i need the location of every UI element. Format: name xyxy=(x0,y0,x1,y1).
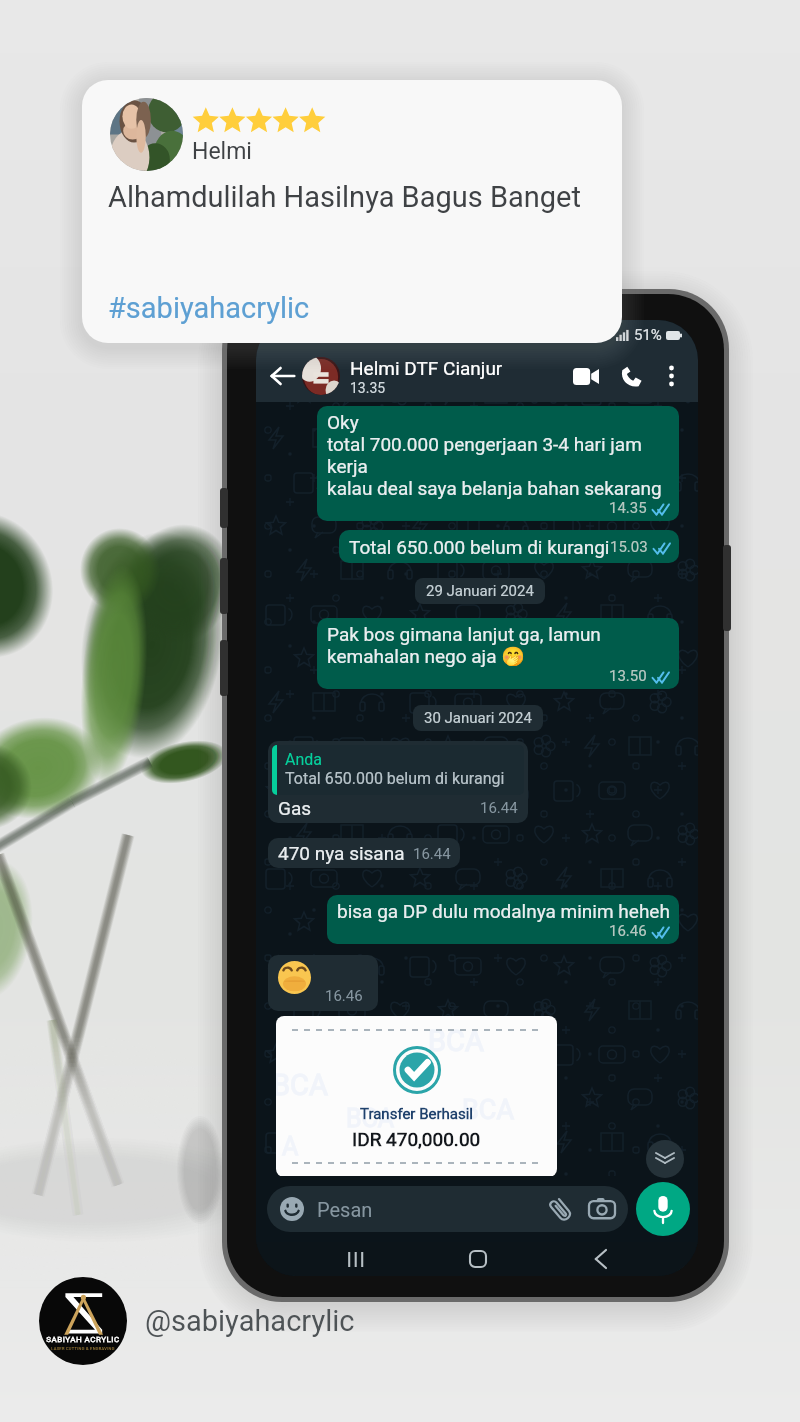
button[interactable]: Video call xyxy=(570,360,602,392)
staticText: 13.50 xyxy=(609,667,647,685)
staticText: 16.44 xyxy=(413,845,451,863)
staticText: Helmi DTF Cianjur xyxy=(350,357,503,379)
staticText: Gas xyxy=(278,797,312,819)
button[interactable]: SABIYAH ACRYLIC xyxy=(39,1277,127,1365)
staticText: @sabiyahacrylic xyxy=(145,1304,355,1338)
staticText: 15.03 xyxy=(610,538,648,556)
staticText: 16.44 xyxy=(480,799,518,817)
staticText: 51% xyxy=(634,326,662,344)
staticText: BCA xyxy=(428,1024,484,1058)
button[interactable]: Pak bos gimana lanjut ga, lamun xyxy=(317,618,679,689)
staticText: kemahalan nego aja 🤭 xyxy=(327,645,525,667)
staticText: Pak bos gimana lanjut ga, lamun xyxy=(327,623,601,645)
staticText: 470 nya sisana xyxy=(278,842,405,864)
staticText: LASER CUTTING & ENGRAVING xyxy=(40,1346,126,1351)
staticText: SABIYAH ACRYLIC xyxy=(40,1335,126,1344)
staticText: Helmi xyxy=(192,138,252,165)
staticText: kerja xyxy=(327,455,368,477)
button[interactable]: Back xyxy=(266,359,300,393)
staticText: Oky xyxy=(327,411,359,433)
staticText: total 700.000 pengerjaan 3-4 hari jam xyxy=(327,433,642,455)
staticText: 29 Januari 2024 xyxy=(426,582,534,600)
button[interactable]: Total 650.000 belum di kurangi xyxy=(339,530,679,563)
staticText: #sabiyahacrylic xyxy=(108,291,310,325)
button[interactable]: 470 nya sisana xyxy=(268,838,460,868)
staticText: BCA xyxy=(346,1104,395,1133)
staticText: 13.35 xyxy=(350,380,386,396)
other: Camera xyxy=(589,1198,615,1220)
staticText: Transfer Berhasil xyxy=(360,1105,474,1123)
button[interactable]: More options xyxy=(658,363,684,389)
staticText: Total 650.000 belum di kurangi xyxy=(285,769,505,788)
button[interactable]: bisa ga DP dulu modalnya minim heheh xyxy=(327,895,679,944)
staticText: BCA xyxy=(462,1094,515,1126)
button[interactable]: Pesan xyxy=(267,1186,628,1232)
button[interactable]: Anda xyxy=(268,741,528,823)
staticText: Anda xyxy=(285,750,322,769)
staticText: 16.46 xyxy=(325,987,363,1005)
staticText: Pesan xyxy=(317,1198,373,1221)
staticText: Total 650.000 belum di kurangi xyxy=(349,536,610,558)
staticText: 30 Januari 2024 xyxy=(424,709,532,727)
button[interactable]: Helmi xyxy=(82,80,622,343)
staticText: bisa ga DP dulu modalnya minim heheh xyxy=(337,900,670,922)
other: Attach xyxy=(549,1197,572,1222)
button[interactable]: Call xyxy=(616,361,646,391)
button[interactable]: 16.46 xyxy=(268,955,378,1011)
button[interactable]: Record voice message xyxy=(636,1182,690,1236)
staticText: IDR 470,000.00 xyxy=(352,1128,481,1150)
staticText: Alhamdulilah Hasilnya Bagus Banget xyxy=(108,180,581,214)
button[interactable]: BCA xyxy=(276,1016,557,1177)
staticText: BCA xyxy=(276,1068,328,1102)
button[interactable]: Back xyxy=(576,1242,624,1276)
button[interactable]: Scroll to bottom xyxy=(646,1140,684,1178)
button[interactable]: Recents xyxy=(332,1242,380,1276)
staticText: 13.55 xyxy=(276,326,314,344)
button[interactable]: Oky xyxy=(317,406,679,521)
staticText: 16.46 xyxy=(609,922,647,940)
staticText: A xyxy=(282,1132,299,1161)
button[interactable]: Home xyxy=(454,1242,502,1276)
staticText: 14.35 xyxy=(609,499,647,517)
staticText: kalau deal saya belanja bahan sekarang xyxy=(327,477,662,499)
